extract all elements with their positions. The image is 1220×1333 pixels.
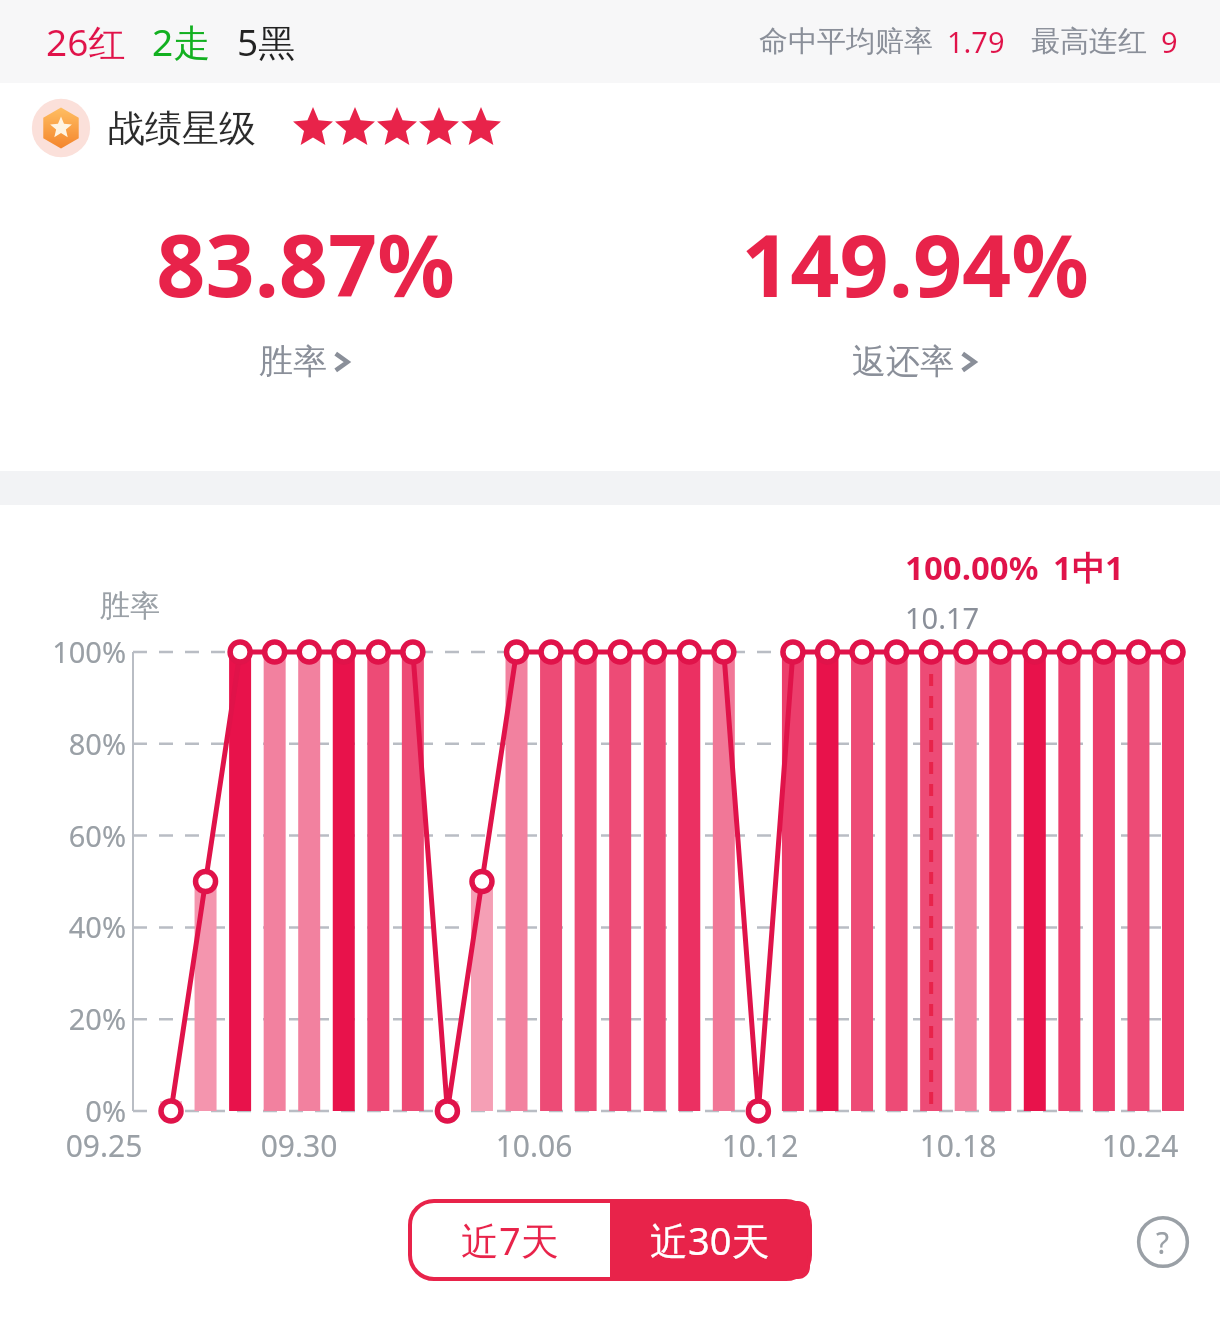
staticText: 5黑 — [237, 16, 296, 67]
staticText: 09.30 — [239, 1125, 359, 1166]
staticText: 10.12 — [700, 1125, 820, 1166]
staticText: ? — [1156, 1222, 1170, 1263]
button[interactable]: 83.87% — [0, 173, 610, 383]
staticText: 胜率 — [100, 587, 160, 625]
staticText: 10.18 — [898, 1125, 1018, 1166]
staticText: 1中1 — [1053, 545, 1124, 590]
staticText: 40% — [40, 907, 126, 946]
staticText: 0% — [40, 1091, 126, 1130]
staticText: 10.06 — [474, 1125, 594, 1166]
staticText: 10.24 — [1080, 1125, 1200, 1166]
staticText: 返还率 — [852, 340, 954, 383]
staticText: 2走 — [152, 16, 211, 67]
button[interactable]: 近30天 — [610, 1201, 810, 1279]
staticText: 1.79 — [947, 22, 1005, 61]
button[interactable]: 近7天 — [410, 1201, 610, 1279]
staticText: 最高连红 — [1031, 23, 1147, 60]
staticText: 09.25 — [44, 1125, 164, 1166]
button[interactable]: 149.94% — [610, 173, 1220, 383]
staticText: 60% — [40, 816, 126, 855]
staticText: 26红 — [46, 16, 126, 67]
staticText: 命中平均赔率 — [759, 23, 933, 60]
button[interactable]: Help — [1134, 1213, 1192, 1271]
staticText: 10.17 — [905, 598, 980, 637]
staticText: 149.94% — [741, 205, 1089, 322]
staticText: 胜率 — [259, 340, 327, 383]
staticText: 战绩星级 — [108, 105, 256, 152]
staticText: 20% — [40, 999, 126, 1038]
staticText: 83.87% — [156, 205, 455, 322]
staticText: 100.00% — [905, 545, 1039, 590]
staticText: 9 — [1161, 22, 1178, 61]
staticText: 80% — [40, 724, 126, 763]
staticText: 100% — [40, 632, 126, 671]
staticText: 近30天 — [650, 1214, 770, 1266]
staticText: 近7天 — [461, 1214, 559, 1266]
